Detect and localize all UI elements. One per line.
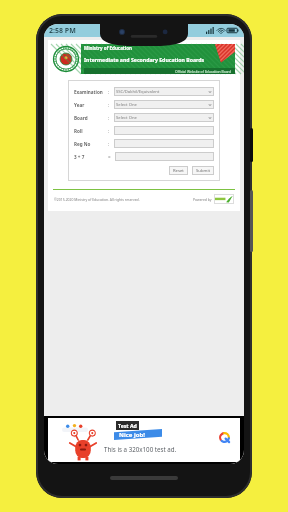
button[interactable]: Select One <box>114 113 214 122</box>
button[interactable] <box>114 126 214 135</box>
button[interactable] <box>115 152 214 161</box>
staticText: Reset <box>173 168 184 174</box>
staticText: : <box>108 115 110 121</box>
staticText: ©2015-2020 Ministry of Education. All ri… <box>54 197 140 202</box>
button[interactable]: Test advertisement <box>48 418 240 462</box>
staticText: : <box>108 141 110 147</box>
staticText: This is a 320x100 test ad. <box>104 445 177 453</box>
staticText: Intermediate and Secondary Education Boa… <box>84 56 235 63</box>
staticText: Select One <box>116 115 137 121</box>
staticText: Year <box>74 102 85 108</box>
staticText: Test Ad <box>118 422 137 429</box>
staticText: Powered by <box>193 197 212 202</box>
button[interactable]: SSC/Dakhil/Equivalent <box>114 87 214 96</box>
staticText: Roll <box>74 128 83 134</box>
button[interactable] <box>114 139 214 148</box>
staticText: Examination <box>74 89 103 95</box>
button[interactable]: Select One <box>114 100 214 109</box>
button[interactable]: Powered by partner <box>214 194 234 204</box>
button[interactable]: Submit <box>192 166 214 175</box>
staticText: Reg No <box>74 141 91 147</box>
staticText: : <box>108 89 110 95</box>
staticText: Submit <box>196 168 210 174</box>
staticText: SSC/Dakhil/Equivalent <box>116 89 160 95</box>
button[interactable]: Reset <box>169 166 188 175</box>
staticText: : <box>108 128 110 134</box>
staticText: = <box>108 154 111 160</box>
staticText: 2:58 PM <box>49 26 76 36</box>
staticText: Official Website of Education Board <box>175 69 232 74</box>
staticText: Board <box>74 115 88 121</box>
staticText: 3 + 7 <box>74 154 85 160</box>
staticText: : <box>108 102 110 108</box>
staticText: Ministry of Education <box>84 45 132 51</box>
staticText: Nice job! <box>119 431 145 439</box>
staticText: Select One <box>116 102 137 108</box>
